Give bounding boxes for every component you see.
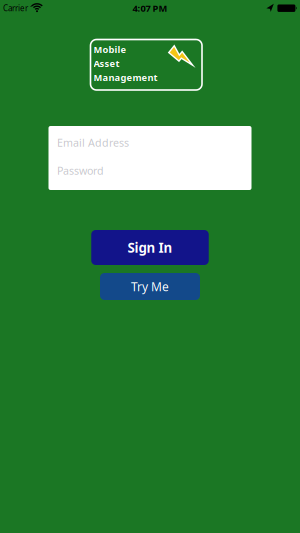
button[interactable]: Try Me <box>100 273 200 300</box>
staticText: 4:07 PM <box>132 2 167 14</box>
button[interactable]: Email Address <box>48 128 251 156</box>
staticText: Sign In <box>127 239 172 256</box>
staticText: Carrier <box>3 3 28 13</box>
staticText: Email Address <box>57 135 129 150</box>
button[interactable]: Password <box>48 156 251 184</box>
staticText: Asset <box>93 57 119 70</box>
button[interactable]: Sign In <box>91 230 209 265</box>
staticText: Mobile <box>93 43 126 56</box>
staticText: Management <box>93 71 157 84</box>
staticText: Try Me <box>131 278 169 294</box>
staticText: Password <box>57 163 104 178</box>
